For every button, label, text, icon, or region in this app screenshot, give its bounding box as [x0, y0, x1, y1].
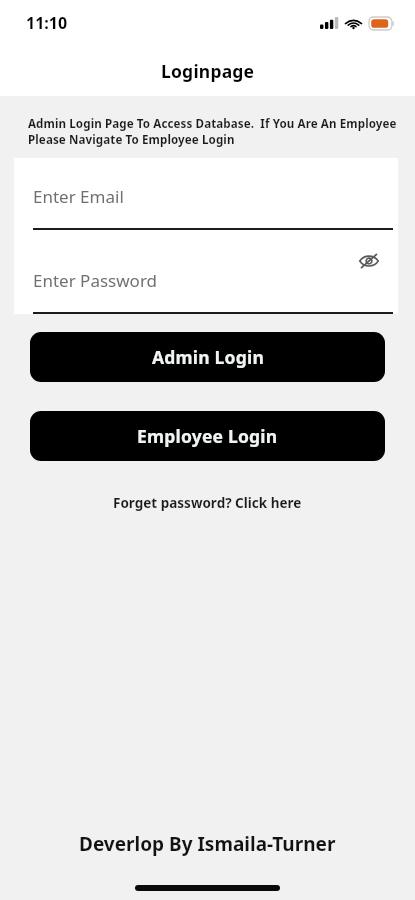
staticText: Employee Login — [137, 424, 278, 448]
staticText: Forget password? Click here — [113, 494, 302, 512]
staticText: Enter Email — [33, 185, 124, 208]
button[interactable]: Admin Login — [30, 332, 385, 382]
staticText: 11:10 — [26, 12, 68, 34]
button[interactable]: Enter Email — [14, 158, 398, 230]
staticText: Enter Password — [33, 269, 158, 292]
staticText: Admin Login Page To Access Database. If … — [28, 116, 397, 147]
button[interactable]: Show password — [354, 246, 384, 276]
button[interactable]: Forget password? Click here — [103, 490, 312, 516]
button[interactable]: Employee Login — [30, 411, 385, 461]
staticText: Loginpage — [161, 59, 255, 83]
button[interactable]: Enter Password — [14, 230, 398, 314]
staticText: Deverlop By Ismaila-Turner — [79, 831, 336, 857]
staticText: Admin Login — [152, 345, 264, 369]
